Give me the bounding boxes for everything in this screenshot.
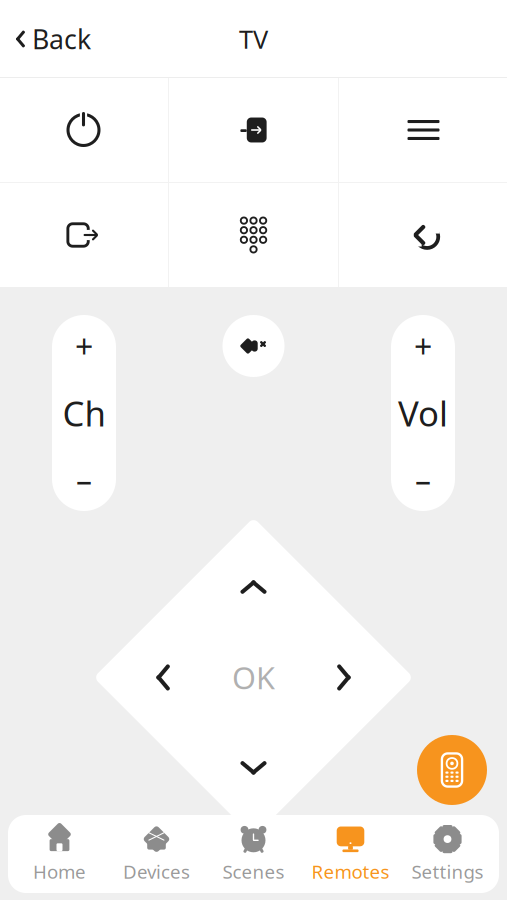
button[interactable]: Right — [316, 642, 372, 712]
button[interactable]: Mute — [222, 315, 284, 377]
button[interactable]: Ch up — [52, 315, 116, 377]
button[interactable]: Remotes — [302, 823, 399, 885]
staticText: Remotes — [311, 859, 389, 884]
staticText: Scenes — [222, 859, 284, 884]
staticText: Vol — [398, 390, 448, 436]
button[interactable]: Return — [339, 183, 507, 287]
staticText: TV — [239, 22, 268, 56]
button[interactable]: Power — [0, 78, 168, 182]
button[interactable]: Settings — [399, 823, 496, 885]
button[interactable]: Up — [218, 559, 288, 615]
staticText: Home — [33, 859, 86, 884]
button[interactable]: Switch remote — [417, 735, 487, 805]
button[interactable]: Left — [135, 642, 191, 712]
staticText: Settings — [411, 859, 483, 884]
staticText: + — [414, 325, 432, 367]
staticText: – — [415, 459, 431, 501]
staticText: Ch — [62, 390, 105, 436]
button[interactable]: Devices — [108, 823, 205, 885]
button[interactable]: Keypad — [169, 183, 338, 287]
staticText: – — [76, 459, 92, 501]
button[interactable]: Vol down — [391, 449, 455, 511]
button[interactable]: Scenes — [205, 823, 302, 885]
staticText: + — [75, 325, 93, 367]
button[interactable]: Back — [0, 11, 91, 67]
button[interactable]: Input — [169, 78, 338, 182]
staticText: Back — [32, 21, 91, 57]
button[interactable]: Down — [218, 740, 288, 796]
button[interactable]: Vol up — [391, 315, 455, 377]
button[interactable]: Ch down — [52, 449, 116, 511]
button[interactable]: Exit — [0, 183, 168, 287]
button[interactable]: OK — [210, 642, 296, 712]
staticText: Devices — [123, 859, 190, 884]
button[interactable]: Home — [11, 823, 108, 885]
button[interactable]: Menu — [339, 78, 507, 182]
staticText: OK — [232, 657, 275, 698]
